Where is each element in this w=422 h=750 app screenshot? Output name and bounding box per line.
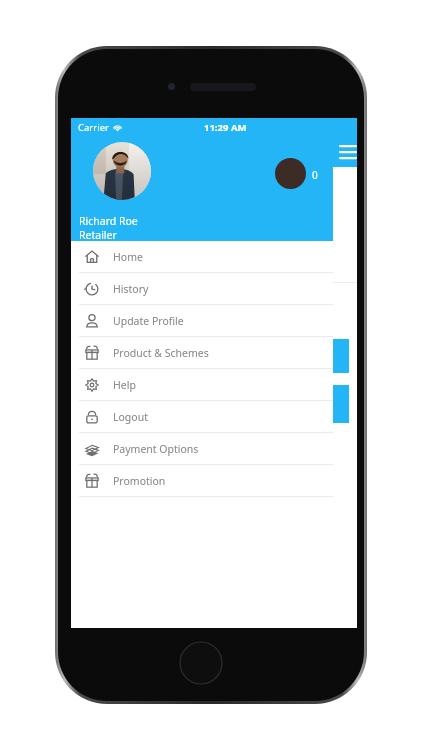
- staticText: Welcome: [79, 173, 127, 188]
- button[interactable]: Profile photo: [93, 142, 151, 200]
- staticText: Carrier: [78, 121, 109, 134]
- staticText: 9862xxxxxx: [79, 205, 143, 220]
- staticText: Home: [113, 250, 143, 264]
- staticText: 0: [312, 168, 318, 182]
- staticText: Payment Options: [113, 442, 199, 456]
- button[interactable]: Logout: [71, 401, 333, 432]
- button[interactable]: Points: [275, 158, 306, 189]
- button[interactable]: History: [71, 273, 333, 304]
- button[interactable]: Help: [71, 369, 333, 400]
- staticText: Richard Roe: [79, 190, 145, 205]
- button[interactable]: Product & Schemes: [71, 337, 333, 368]
- button[interactable]: Home: [71, 241, 333, 272]
- staticText: Richard Roe: [79, 214, 138, 228]
- button[interactable]: SCAN: [79, 339, 349, 373]
- button[interactable]: Update Profile: [71, 305, 333, 336]
- staticText: Scan Coupon: [79, 254, 141, 268]
- staticText: REDEEM: [192, 397, 237, 412]
- staticText: SCAN: [199, 349, 229, 364]
- staticText: 11:29 AM: [204, 121, 247, 134]
- button[interactable]: Open navigation menu: [337, 140, 359, 162]
- staticText: Product & Schemes: [113, 346, 209, 360]
- staticText: LifeTime Points: [79, 237, 151, 251]
- staticText: No records: [79, 449, 131, 463]
- staticText: Promotion: [113, 474, 166, 488]
- staticText: Retailer: [79, 228, 117, 242]
- staticText: History: [113, 282, 149, 296]
- staticText: Logout: [113, 410, 148, 424]
- staticText: Help: [113, 378, 136, 392]
- staticText: Update Profile: [113, 314, 184, 328]
- staticText: Retailer: [79, 220, 111, 231]
- button[interactable]: REDEEM: [79, 385, 349, 423]
- button[interactable]: Payment Options: [71, 433, 333, 464]
- button[interactable]: Promotion: [71, 465, 333, 496]
